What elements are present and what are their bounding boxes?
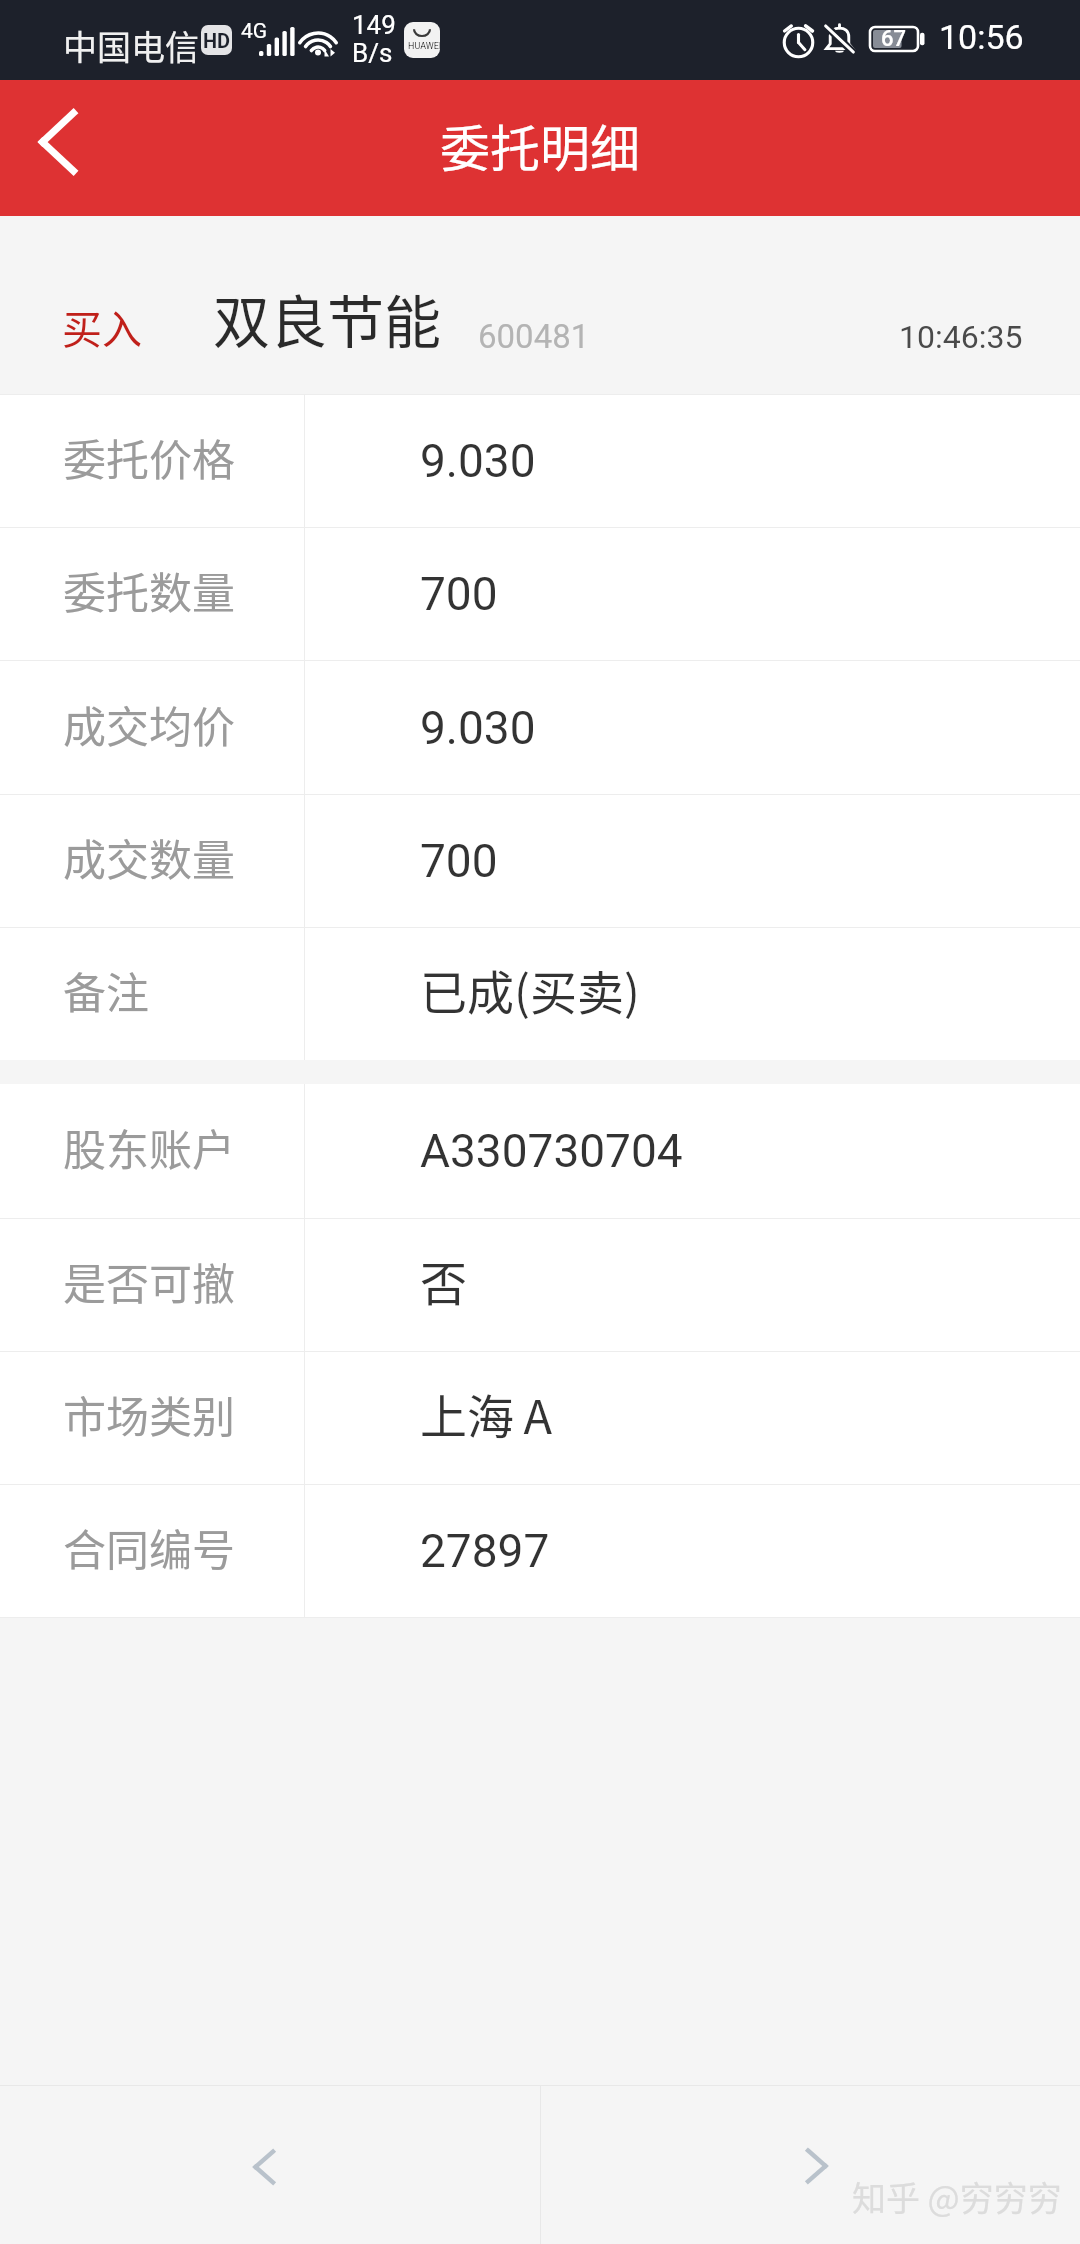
staticText: HUAWEI <box>408 41 440 52</box>
staticText: 买入 <box>62 298 142 356</box>
staticText: 知乎 @穷穷穷 <box>852 2172 1062 2221</box>
staticText: 双良节能 <box>213 277 441 360</box>
staticText: 否 <box>420 1246 467 1314</box>
button[interactable]: 备注 <box>0 928 1080 1060</box>
button[interactable]: 股东账户 <box>0 1084 1080 1218</box>
staticText: 成交均价 <box>63 693 235 755</box>
button[interactable]: 成交数量 <box>0 795 1080 927</box>
staticText: 10:46:35 <box>899 318 1023 356</box>
button[interactable]: Next order <box>541 2086 1080 2244</box>
staticText: B/s <box>352 38 393 68</box>
button[interactable]: 委托价格 <box>0 395 1080 527</box>
staticText: 备注 <box>63 959 149 1021</box>
button[interactable]: 合同编号 <box>0 1485 1080 1617</box>
button[interactable]: 市场类别 <box>0 1352 1080 1484</box>
staticText: 委托数量 <box>63 559 235 621</box>
staticText: A330730704 <box>420 1124 683 1178</box>
staticText: 合同编号 <box>63 1516 235 1578</box>
staticText: 委托明细 <box>440 109 640 181</box>
staticText: 上海 A <box>420 1379 552 1447</box>
button[interactable]: Back <box>0 80 118 216</box>
staticText: 149 <box>352 10 396 40</box>
staticText: 股东账户 <box>63 1116 235 1178</box>
staticText: 4G <box>241 19 268 44</box>
staticText: 27897 <box>420 1524 550 1578</box>
button[interactable]: 委托数量 <box>0 528 1080 660</box>
staticText: 市场类别 <box>63 1383 235 1445</box>
staticText: 已成(买卖) <box>420 955 640 1023</box>
staticText: 67 <box>881 26 907 52</box>
staticText: 中国电信 <box>63 21 199 70</box>
staticText: 700 <box>420 834 498 888</box>
staticText: 成交数量 <box>63 826 235 888</box>
staticText: 9.030 <box>420 701 536 755</box>
button[interactable]: 是否可撤 <box>0 1219 1080 1351</box>
staticText: 委托价格 <box>63 426 235 488</box>
staticText: 9.030 <box>420 434 536 488</box>
button[interactable]: 成交均价 <box>0 661 1080 794</box>
staticText: HD <box>203 29 231 52</box>
staticText: 10:56 <box>939 17 1024 57</box>
staticText: 是否可撤 <box>63 1250 235 1312</box>
staticText: 700 <box>420 567 498 621</box>
staticText: 600481 <box>478 317 590 356</box>
